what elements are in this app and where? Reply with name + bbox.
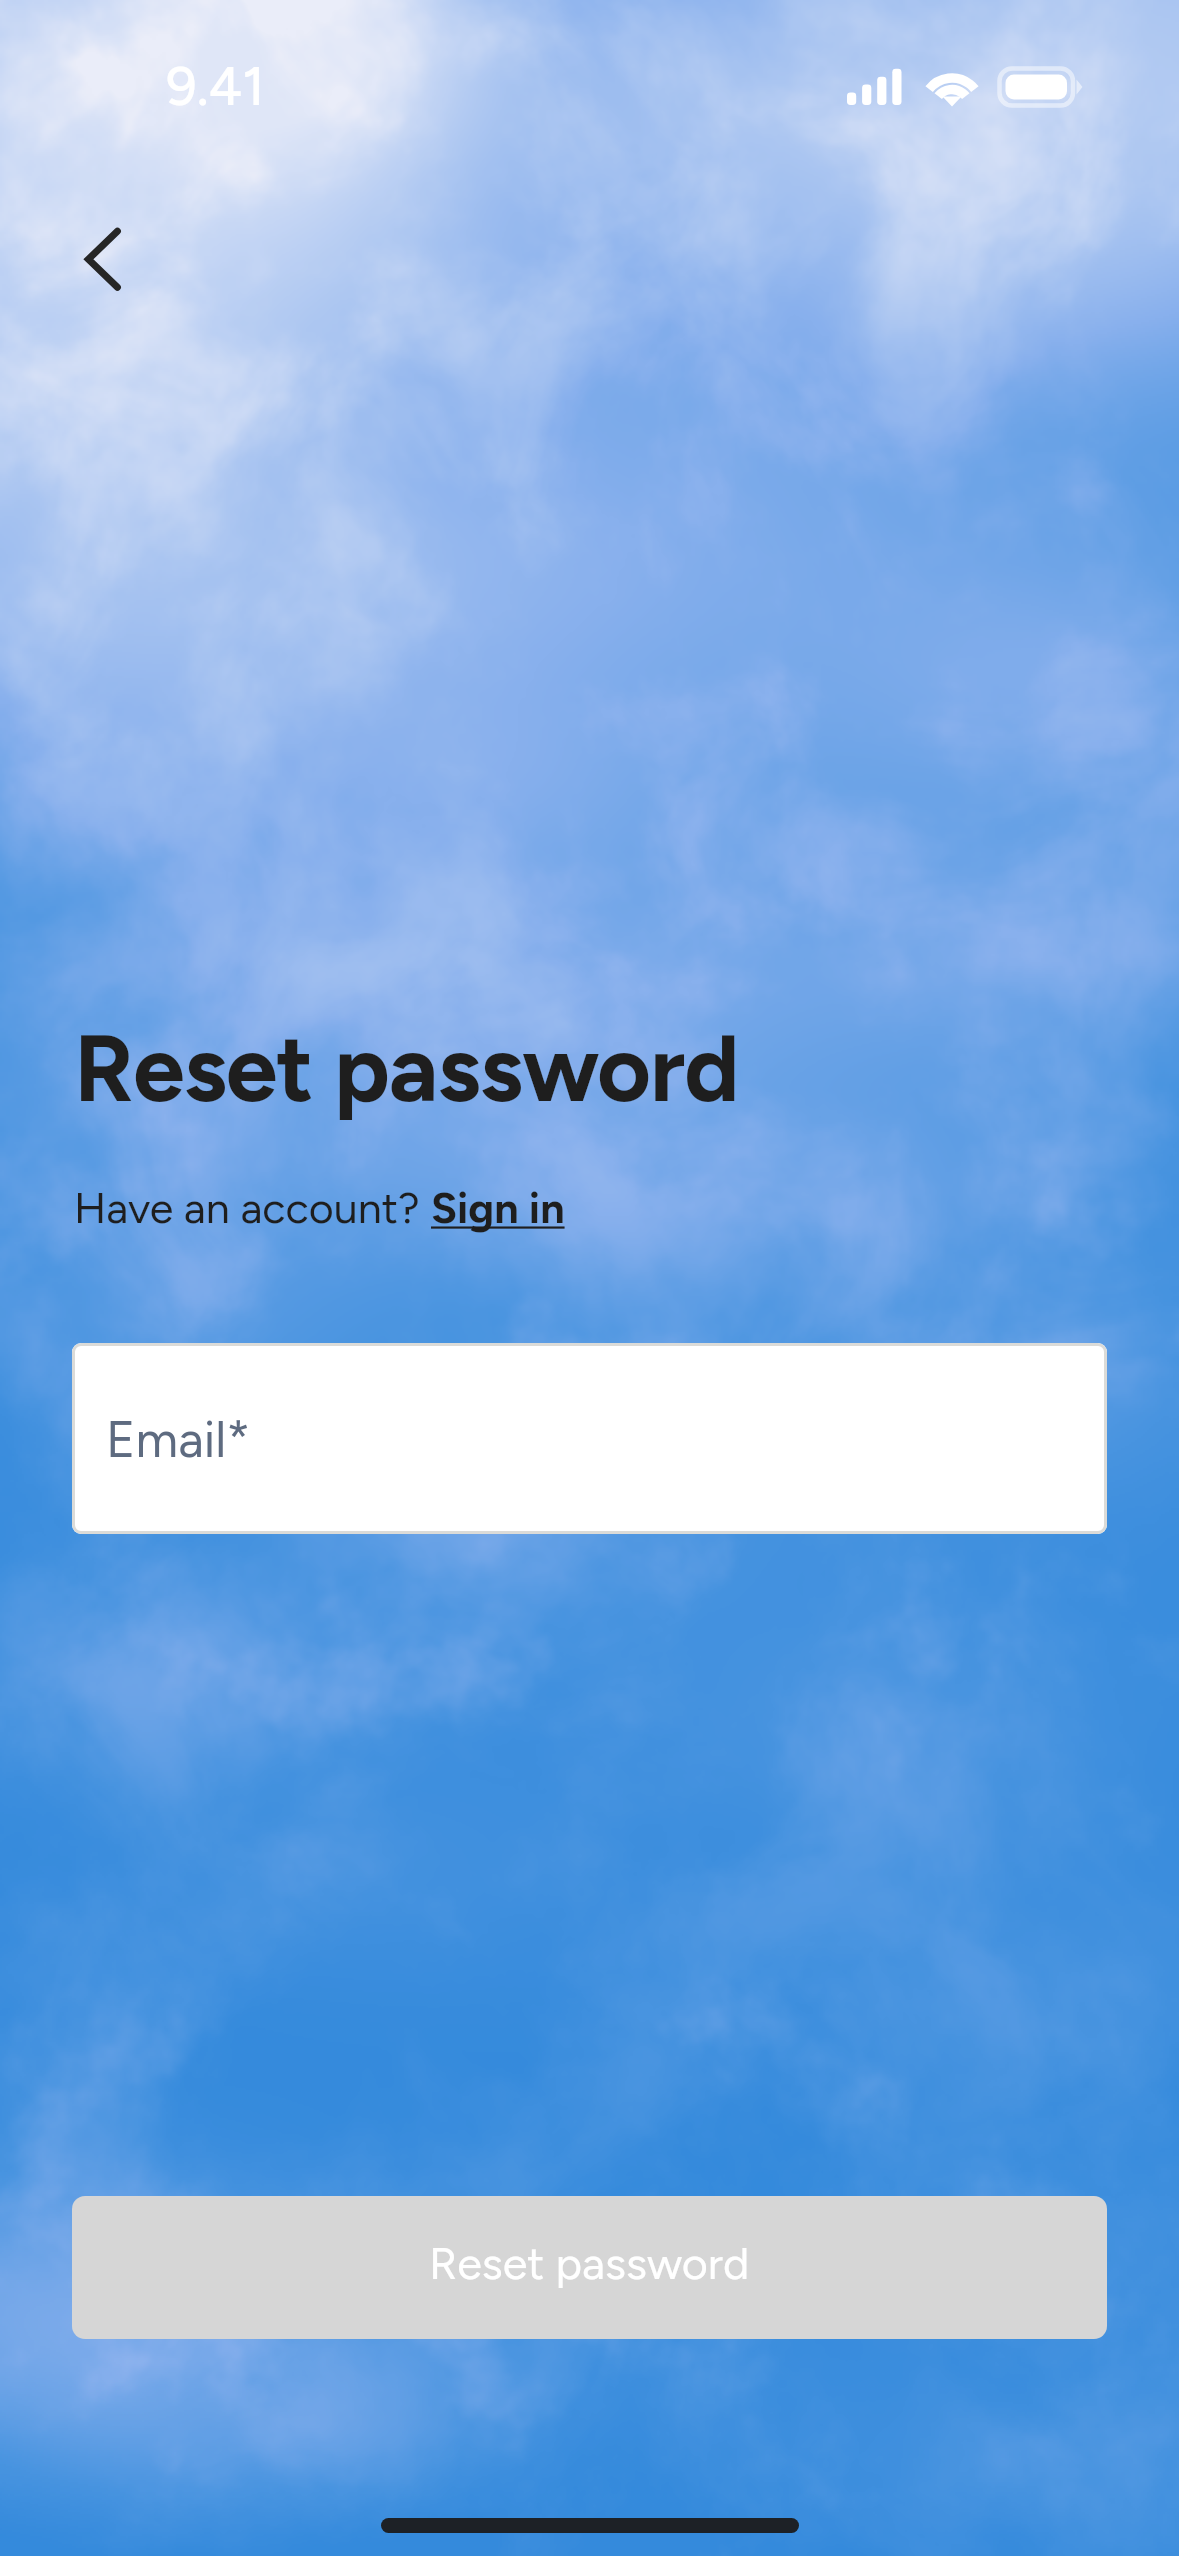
staticText: Email* (106, 1409, 251, 1469)
staticText: 9.41 (166, 54, 265, 119)
staticText: Reset password (429, 2236, 750, 2290)
button[interactable]: Reset password (72, 2196, 1107, 2339)
button[interactable]: Email* (72, 1343, 1107, 1534)
staticText: Reset password (74, 1013, 739, 1125)
staticText: Have an account? (74, 1182, 431, 1234)
button[interactable]: Back (52, 200, 168, 318)
button[interactable]: Sign in (431, 1182, 565, 1234)
staticText: Sign in (431, 1182, 565, 1234)
